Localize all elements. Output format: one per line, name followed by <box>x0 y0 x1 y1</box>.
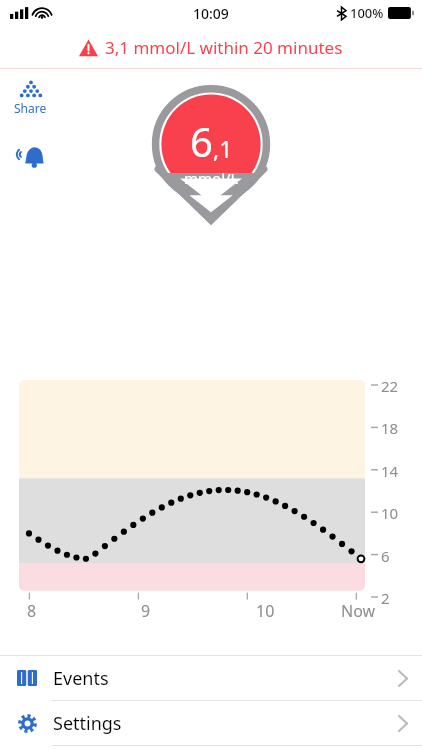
staticText: 3,1 mmol/L within 20 minutes <box>105 36 343 59</box>
button[interactable]: 3,1 mmol/L within 20 minutes <box>0 26 422 68</box>
staticText: 22 <box>381 376 399 396</box>
button[interactable]: Settings <box>0 701 422 745</box>
button[interactable]: Alerts <box>12 138 48 174</box>
staticText: 10 <box>381 503 399 523</box>
staticText: Events <box>53 666 109 691</box>
staticText: 14 <box>381 461 399 481</box>
staticText: mmol/L <box>184 168 239 188</box>
staticText: 18 <box>381 418 399 438</box>
staticText: 2 <box>381 588 390 608</box>
staticText: 100% <box>350 4 384 22</box>
staticText: 8 <box>27 600 37 622</box>
staticText: 6 <box>381 546 390 566</box>
staticText: ,1 <box>213 133 233 164</box>
staticText: Settings <box>53 711 122 736</box>
staticText: 10:09 <box>193 4 229 23</box>
staticText: Share <box>14 100 47 116</box>
staticText: Now <box>341 600 376 622</box>
button[interactable]: Share <box>10 78 51 118</box>
staticText: 6 <box>190 114 213 168</box>
staticText: 10 <box>256 600 275 622</box>
staticText: 9 <box>141 600 151 622</box>
button[interactable]: Events <box>0 656 422 700</box>
